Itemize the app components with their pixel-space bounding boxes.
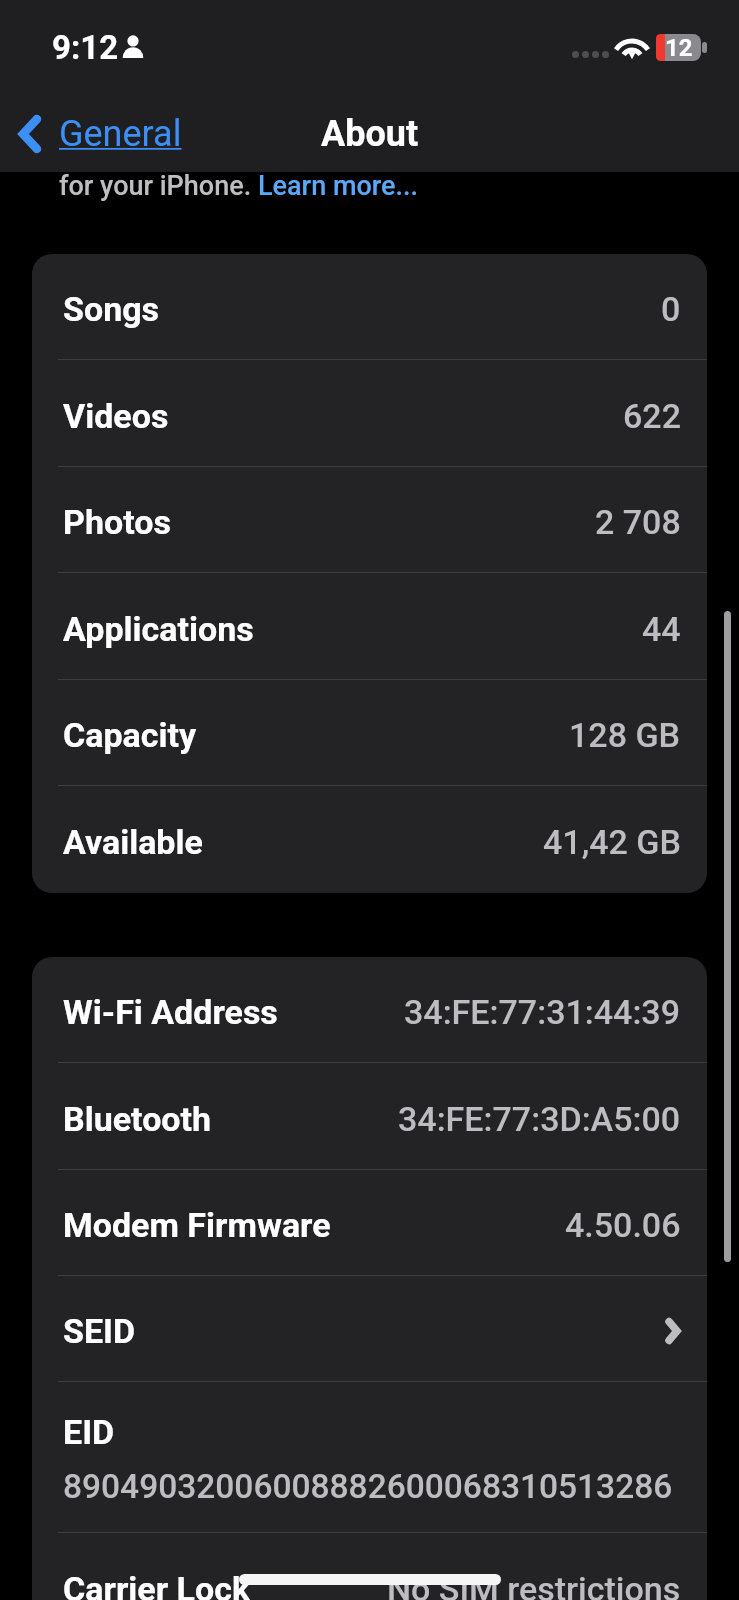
button[interactable]: Bluetooth: [32, 1063, 707, 1170]
staticText: 44: [642, 609, 681, 649]
staticText: Videos: [63, 396, 169, 436]
staticText: 4.50.06: [565, 1205, 681, 1245]
staticText: 0: [661, 289, 681, 329]
staticText: SEID: [63, 1311, 136, 1351]
staticText: 2 708: [595, 502, 681, 542]
button[interactable]: Available: [32, 786, 707, 893]
staticText: Photos: [63, 502, 171, 542]
staticText: for your iPhone.: [59, 170, 258, 202]
staticText: 9:12: [52, 28, 119, 67]
button[interactable]: EID: [32, 1382, 707, 1533]
staticText: Available: [63, 822, 203, 862]
staticText: Wi-Fi Address: [63, 992, 278, 1032]
button[interactable]: Back: [18, 113, 182, 155]
staticText: Songs: [63, 289, 160, 329]
staticText: 34:FE:77:31:44:39: [404, 992, 681, 1032]
button[interactable]: Modem Firmware: [32, 1170, 707, 1276]
staticText: Applications: [63, 609, 254, 649]
staticText: 41,42 GB: [543, 822, 681, 862]
staticText: 34:FE:77:3D:A5:00: [398, 1099, 681, 1139]
button[interactable]: SEID: [32, 1276, 707, 1382]
staticText: Carrier Lock: [63, 1569, 251, 1600]
button[interactable]: Photos: [32, 467, 707, 573]
staticText: 622: [623, 396, 681, 436]
staticText: 89049032006008882600068310513286: [63, 1467, 673, 1506]
staticText: 12: [665, 34, 693, 61]
staticText: Capacity: [63, 715, 197, 755]
button[interactable]: Wi-Fi Address: [32, 957, 707, 1063]
button[interactable]: Learn more...: [258, 170, 418, 202]
staticText: General: [59, 113, 182, 155]
staticText: About: [321, 113, 419, 155]
button[interactable]: Capacity: [32, 680, 707, 786]
button[interactable]: Videos: [32, 360, 707, 467]
staticText: Bluetooth: [63, 1099, 212, 1139]
button[interactable]: Songs: [32, 254, 707, 360]
staticText: Modem Firmware: [63, 1205, 331, 1245]
staticText: No SIM restrictions: [387, 1569, 681, 1600]
staticText: 128 GB: [569, 715, 681, 755]
button[interactable]: Carrier Lock: [32, 1533, 707, 1600]
other: Back: [18, 114, 42, 154]
button[interactable]: Applications: [32, 573, 707, 680]
staticText: EID: [63, 1412, 115, 1452]
